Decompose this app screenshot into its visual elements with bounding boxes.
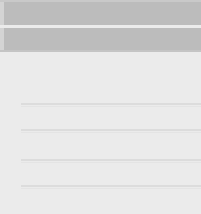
button[interactable]: List item — [0, 103, 201, 105]
button[interactable]: List item — [0, 185, 201, 187]
other: Status bar — [0, 2, 201, 25]
button[interactable]: App bar — [0, 28, 201, 50]
button[interactable]: List item — [0, 159, 201, 161]
button[interactable]: List item — [0, 129, 201, 131]
